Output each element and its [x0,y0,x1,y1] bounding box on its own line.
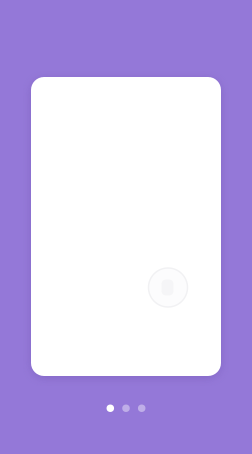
button[interactable]: Page 3 [138,404,145,412]
button[interactable]: Page 1, current page [106,404,114,412]
button[interactable]: Compose [148,268,187,307]
button[interactable]: Page 2 [122,404,130,412]
